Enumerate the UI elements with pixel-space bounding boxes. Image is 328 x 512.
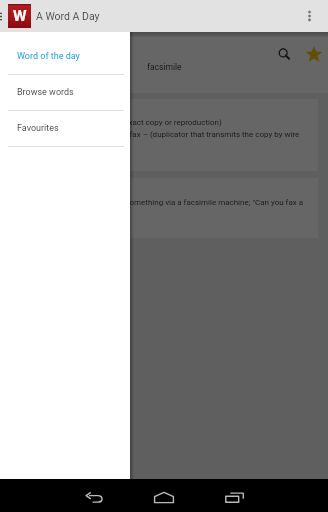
button[interactable]: Browse words xyxy=(0,75,130,110)
button[interactable]: Word of the day xyxy=(0,39,130,74)
staticText: S: (v) telefax, facsimile (send somethin… xyxy=(21,198,304,207)
button[interactable]: Add to favourites xyxy=(300,40,328,68)
staticText: Word of the day xyxy=(17,51,80,62)
button[interactable]: S: (n) facsimile, autotype (an exact cop… xyxy=(10,99,318,171)
button[interactable]: S: (v) telefax, facsimile (send somethin… xyxy=(10,178,318,238)
staticText: facsimile xyxy=(147,62,182,72)
button[interactable]: More options xyxy=(297,4,321,28)
button[interactable]: Back xyxy=(72,483,116,512)
staticText: S: (n) facsimile, autotype (an exact cop… xyxy=(21,118,222,127)
button[interactable]: Recent apps xyxy=(212,483,256,512)
staticText: Favourites xyxy=(17,123,59,134)
staticText: S: (n) telefax machine, telefax, fax – (… xyxy=(21,130,300,139)
button[interactable]: Search xyxy=(269,40,300,68)
staticText: W xyxy=(13,7,27,25)
button[interactable]: Home xyxy=(142,483,186,512)
staticText: A Word A Day xyxy=(36,10,100,22)
button[interactable]: Open navigation drawer xyxy=(0,6,6,26)
button[interactable]: Favourites xyxy=(0,111,130,146)
button[interactable]: App icon xyxy=(8,4,31,28)
button[interactable]: facsimile xyxy=(0,37,328,93)
staticText: Browse words xyxy=(17,87,74,98)
